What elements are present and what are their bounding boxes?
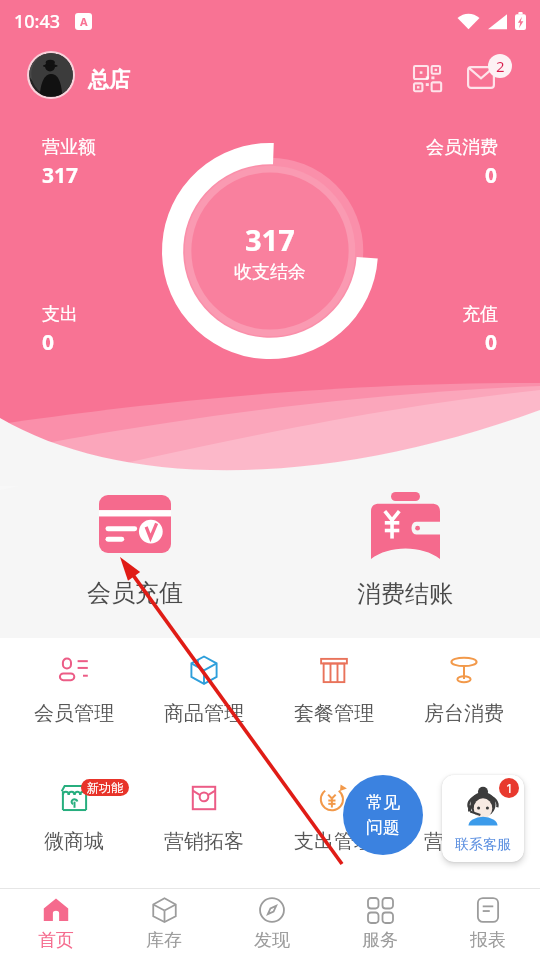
staticText: 营业额	[42, 136, 96, 159]
staticText: 发现	[254, 929, 290, 952]
staticText: 首页	[38, 929, 74, 952]
staticText: 0	[42, 328, 55, 357]
button[interactable]: Profile	[27, 51, 75, 99]
button[interactable]: Scan QR code	[406, 57, 450, 101]
button[interactable]: 新功能	[9, 781, 139, 854]
staticText: 房台消费	[424, 701, 504, 726]
button[interactable]: 商品管理	[139, 653, 269, 726]
staticText: 营销短信	[424, 829, 504, 854]
staticText: 收支结余	[234, 261, 306, 284]
staticText: 会员消费	[426, 136, 498, 159]
button[interactable]: Messages	[462, 50, 514, 94]
staticText: 支出	[42, 303, 78, 326]
staticText: 微商城	[44, 829, 104, 854]
staticText: 充值	[462, 303, 498, 326]
button[interactable]: 会员管理	[9, 653, 139, 726]
staticText: 新功能	[87, 780, 123, 795]
button[interactable]: 首页	[2, 897, 110, 952]
button[interactable]: 发现	[218, 897, 326, 952]
staticText: 总店	[88, 67, 130, 93]
staticText: 消费结账	[357, 579, 453, 609]
button[interactable]: 支出管理	[269, 781, 399, 854]
button[interactable]: 消费结账	[324, 492, 486, 609]
staticText: 服务	[362, 929, 398, 952]
staticText: 317	[245, 220, 295, 259]
staticText: 会员管理	[34, 701, 114, 726]
button[interactable]: 会员充值	[55, 495, 215, 608]
staticText: 套餐管理	[294, 701, 374, 726]
button[interactable]: 营销拓客	[139, 781, 269, 854]
staticText: 商品管理	[164, 701, 244, 726]
button[interactable]: 联系客服	[442, 775, 524, 862]
staticText: 问题	[366, 817, 400, 838]
staticText: 报表	[470, 929, 506, 952]
button[interactable]: 房台消费	[399, 653, 529, 726]
staticText: 支出管理	[294, 829, 374, 854]
button[interactable]: 营销短信	[399, 781, 529, 854]
button[interactable]: 常见	[343, 775, 423, 855]
staticText: A	[80, 14, 88, 29]
staticText: 0	[485, 328, 498, 357]
staticText: 2	[496, 56, 505, 76]
button[interactable]: 套餐管理	[269, 653, 399, 726]
staticText: 常见	[366, 792, 400, 813]
button[interactable]: 服务	[326, 897, 434, 952]
staticText: 1	[506, 780, 513, 796]
staticText: 库存	[146, 929, 182, 952]
staticText: 10:43	[14, 9, 61, 34]
button[interactable]: 报表	[434, 897, 540, 952]
staticText: 营销拓客	[164, 829, 244, 854]
staticText: 0	[485, 161, 498, 190]
staticText: 联系客服	[455, 836, 511, 854]
staticText: 317	[42, 161, 79, 190]
staticText: 会员充值	[87, 578, 183, 608]
button[interactable]: 库存	[110, 897, 218, 952]
